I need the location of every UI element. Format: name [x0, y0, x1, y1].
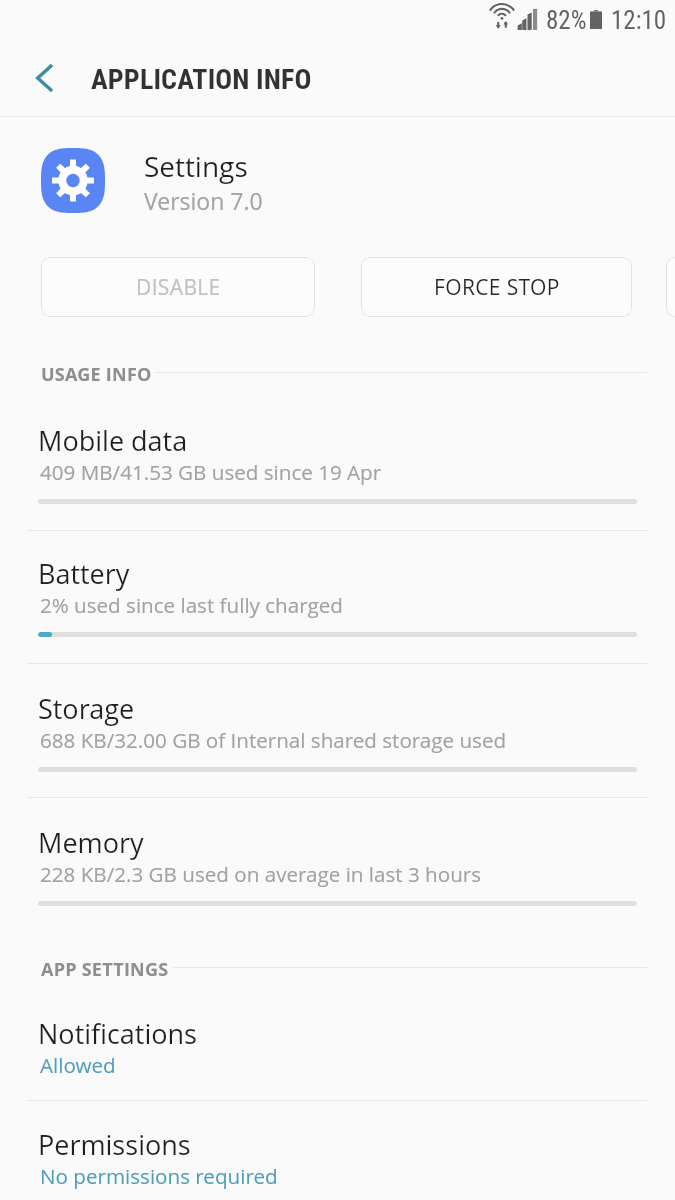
button[interactable]: [0, 531, 675, 663]
button[interactable]: DISABLE: [41, 257, 315, 317]
staticText: Permissions: [38, 1126, 191, 1163]
button[interactable]: FORCE STOP: [361, 257, 632, 317]
staticText: Version 7.0: [144, 185, 263, 216]
staticText: 688 KB/32.00 GB of Internal shared stora…: [40, 726, 507, 754]
staticText: Allowed: [40, 1051, 116, 1079]
staticText: Notifications: [38, 1015, 197, 1052]
staticText: Battery: [38, 555, 130, 592]
button[interactable]: [0, 664, 675, 797]
staticText: APPLICATION INFO: [91, 63, 312, 96]
button[interactable]: UNINSTALL: [666, 257, 675, 317]
staticText: 228 KB/2.3 GB used on average in last 3 …: [40, 860, 482, 888]
staticText: 82%: [546, 6, 587, 35]
button[interactable]: [0, 798, 675, 930]
button[interactable]: Navigate up: [20, 54, 68, 102]
staticText: USAGE INFO: [41, 362, 152, 387]
staticText: 12:10: [611, 6, 667, 35]
staticText: APP SETTINGS: [41, 957, 169, 982]
staticText: Mobile data: [38, 422, 188, 459]
staticText: Storage: [38, 690, 135, 727]
staticText: DISABLE: [136, 273, 221, 302]
staticText: Settings: [144, 147, 248, 185]
staticText: 2% used since last fully charged: [40, 591, 343, 619]
staticText: No permissions required: [40, 1162, 278, 1190]
staticText: FORCE STOP: [434, 273, 560, 302]
button[interactable]: [0, 398, 675, 530]
staticText: Memory: [38, 824, 144, 861]
button[interactable]: [0, 1101, 675, 1200]
staticText: 409 MB/41.53 GB used since 19 Apr: [40, 458, 382, 486]
button[interactable]: [0, 993, 675, 1100]
